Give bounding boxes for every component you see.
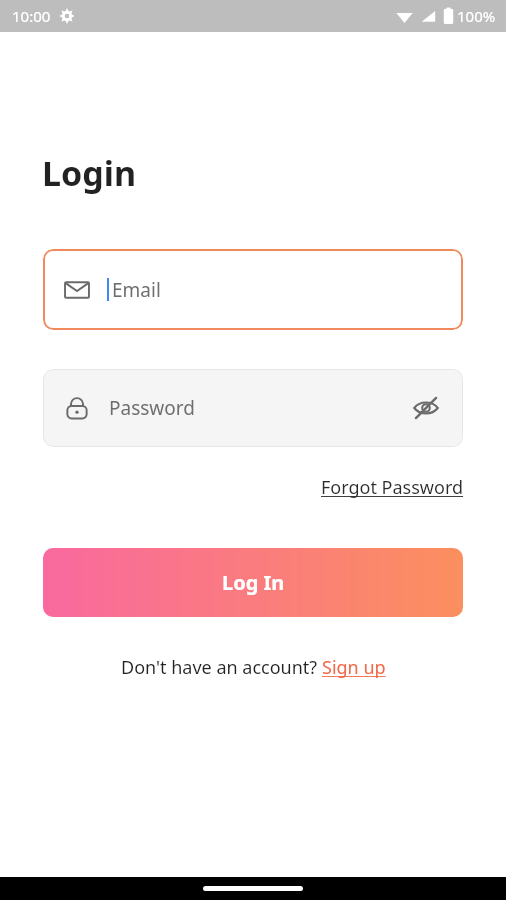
staticText: 10:00 xyxy=(12,6,51,26)
staticText: Forgot Password xyxy=(321,475,464,500)
staticText: Email xyxy=(112,277,161,303)
button[interactable]: Forgot Password xyxy=(321,475,464,500)
staticText: Don't have an account? xyxy=(121,655,322,680)
staticText: Sign up xyxy=(322,655,386,680)
button[interactable]: Log In xyxy=(43,548,463,617)
button[interactable]: Sign up xyxy=(322,655,386,680)
staticText: 100% xyxy=(457,6,496,26)
button[interactable]: Email xyxy=(43,249,463,330)
button[interactable]: Show password xyxy=(409,391,443,425)
button[interactable]: Password xyxy=(43,369,463,447)
staticText: Login xyxy=(42,150,137,196)
staticText: Log In xyxy=(222,569,285,596)
staticText: Password xyxy=(109,395,409,421)
